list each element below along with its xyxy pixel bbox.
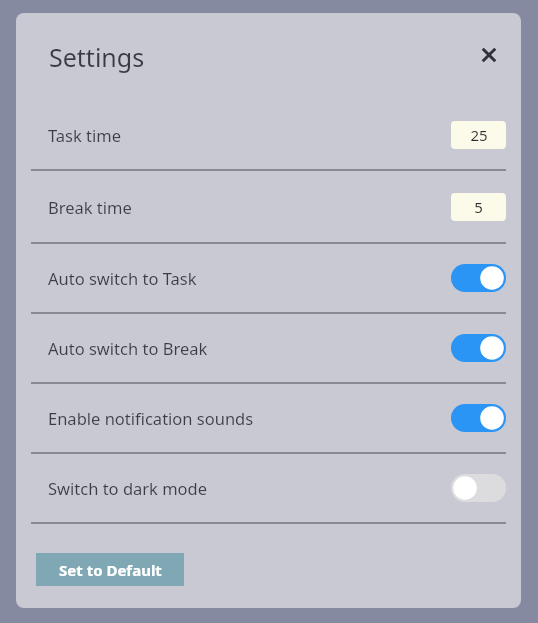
staticText: Auto switch to Break bbox=[48, 337, 451, 359]
button[interactable]: Switch to dark mode bbox=[31, 454, 506, 522]
staticText: Enable notification sounds bbox=[48, 407, 451, 429]
button[interactable]: Auto switch to Break bbox=[31, 314, 506, 382]
button[interactable]: Set to Default bbox=[36, 553, 184, 586]
staticText: Auto switch to Task bbox=[48, 267, 451, 289]
button[interactable]: Auto switch to Task bbox=[31, 244, 506, 312]
staticText: Set to Default bbox=[59, 560, 162, 580]
button[interactable]: Auto switch to Break bbox=[451, 334, 506, 362]
button[interactable]: Task time bbox=[31, 101, 506, 169]
staticText: 25 bbox=[470, 125, 488, 145]
button[interactable]: Enable notification sounds bbox=[31, 384, 506, 452]
button[interactable]: 25 bbox=[451, 121, 506, 149]
button[interactable]: Enable notification sounds bbox=[451, 404, 506, 432]
staticText: 5 bbox=[474, 197, 483, 217]
button[interactable]: Break time bbox=[31, 171, 506, 242]
staticText: Task time bbox=[48, 124, 451, 146]
button[interactable]: Auto switch to Task bbox=[451, 264, 506, 292]
staticText: Switch to dark mode bbox=[48, 477, 451, 499]
button[interactable]: Switch to dark mode bbox=[451, 474, 506, 502]
button[interactable]: 5 bbox=[451, 193, 506, 221]
staticText: Settings bbox=[49, 40, 145, 74]
staticText: Break time bbox=[48, 196, 451, 218]
button[interactable]: Close bbox=[473, 39, 505, 71]
